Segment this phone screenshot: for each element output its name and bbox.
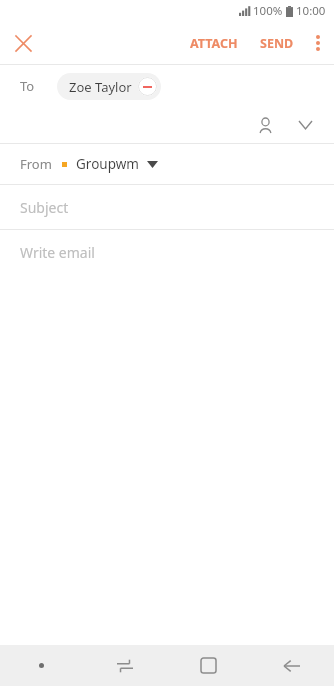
- button[interactable]: Expand recipients: [290, 110, 320, 140]
- button[interactable]: ATTACH: [182, 22, 246, 64]
- staticText: 100%: [253, 3, 283, 19]
- staticText: Zoe Taylor: [69, 78, 132, 96]
- button[interactable]: Close: [0, 22, 46, 64]
- button[interactable]: Add contact: [248, 108, 282, 142]
- other: Remove recipient: [138, 77, 157, 96]
- staticText: From: [20, 155, 52, 173]
- button[interactable]: Subject: [0, 185, 334, 229]
- button[interactable]: More options: [302, 22, 334, 64]
- staticText: 10:00: [296, 3, 326, 19]
- button[interactable]: Zoe Taylor: [57, 73, 161, 100]
- button[interactable]: SEND: [252, 22, 302, 64]
- staticText: SEND: [260, 35, 294, 52]
- staticText: Write email: [20, 243, 95, 262]
- button[interactable]: Write email: [0, 230, 334, 274]
- staticText: Groupwm: [76, 155, 139, 173]
- button[interactable]: Back: [250, 645, 334, 686]
- button[interactable]: Hide navigation bar: [0, 645, 83, 686]
- button[interactable]: Recent apps: [83, 645, 166, 686]
- staticText: ATTACH: [190, 35, 238, 52]
- button[interactable]: From: [0, 144, 334, 184]
- staticText: Subject: [20, 198, 69, 217]
- staticText: To: [20, 77, 35, 95]
- button[interactable]: Home: [166, 645, 250, 686]
